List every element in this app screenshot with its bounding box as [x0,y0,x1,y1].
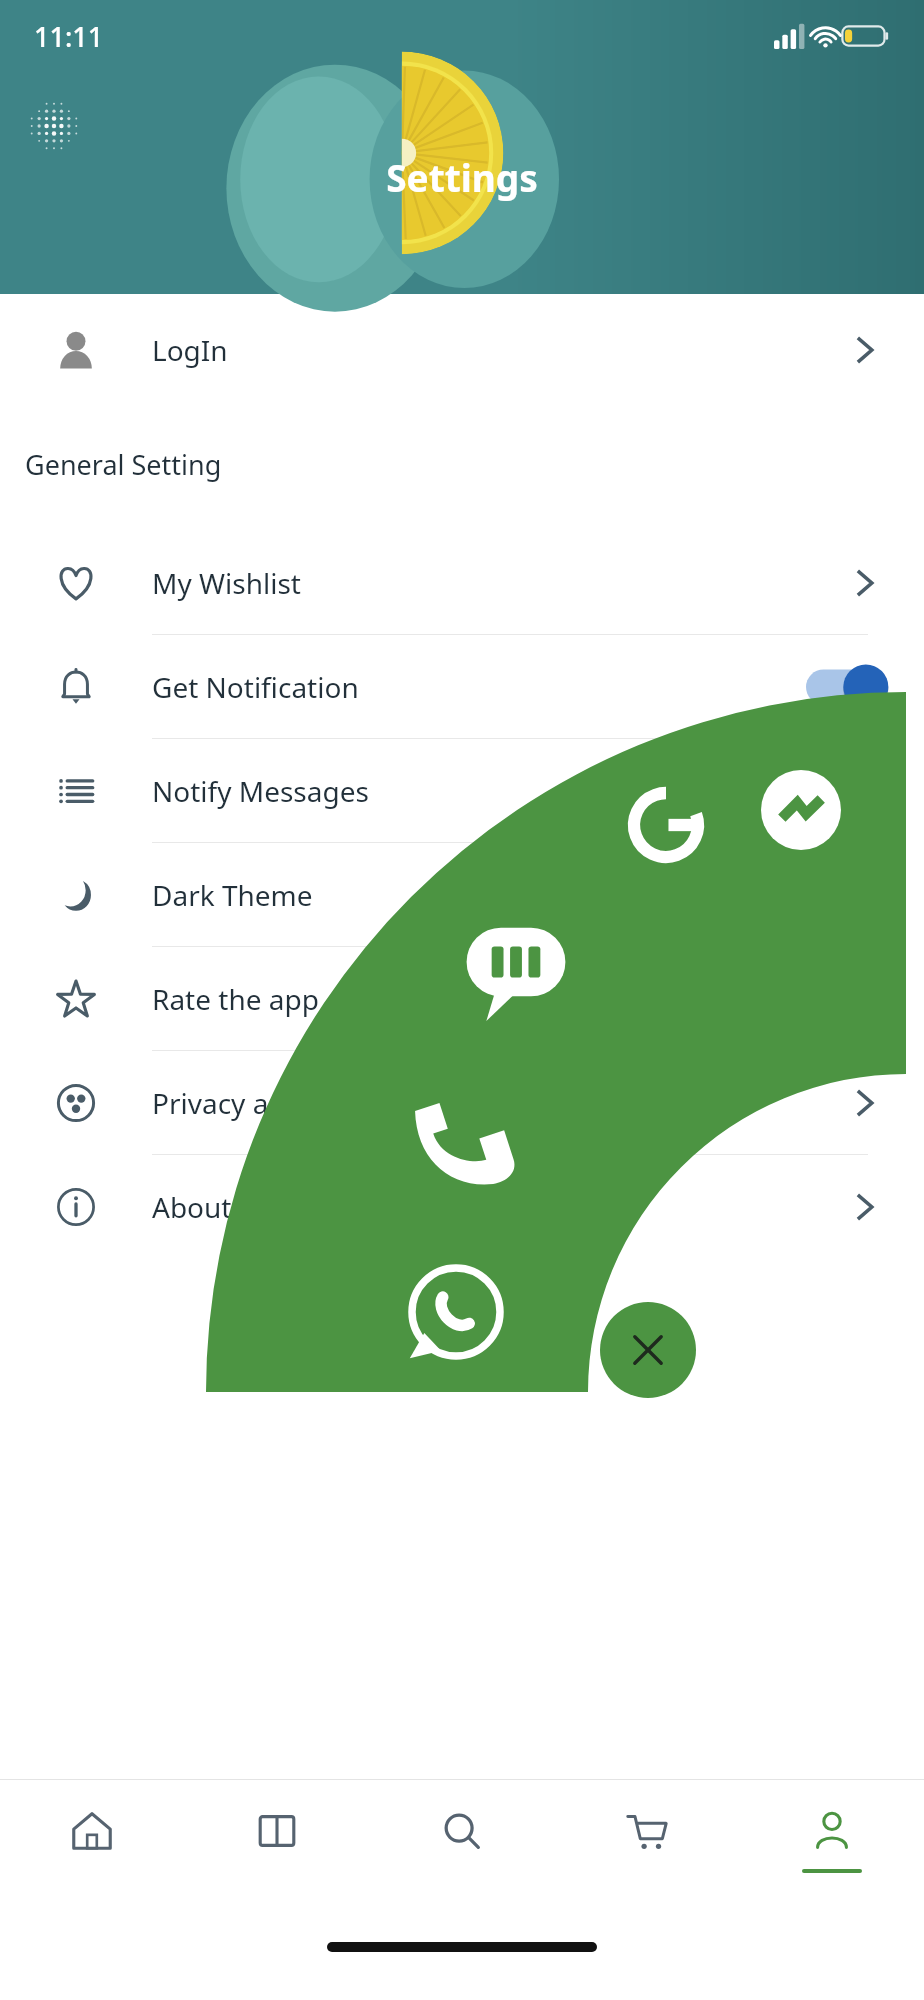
staticText: Settings [386,152,538,202]
staticText: Privacy and Term [152,1084,378,1122]
staticText: 11:11 [34,18,104,55]
button[interactable]: Dark Theme [0,843,924,946]
button[interactable]: Home [0,1780,184,1900]
button[interactable]: Privacy and Term [0,1051,924,1154]
button[interactable]: Profile [739,1780,924,1900]
button[interactable]: Rate the app [0,947,924,1050]
staticText: General Setting [25,446,222,483]
staticText: Rate the app [152,980,319,1018]
button[interactable]: Close share menu [600,1302,696,1398]
staticText: About Us [152,1188,273,1226]
button[interactable]: Catalog [184,1780,369,1900]
button[interactable]: My Wishlist [0,531,924,634]
button[interactable]: Menu [28,100,80,152]
staticText: LogIn [152,331,228,369]
button[interactable]: Notify Messages [0,739,924,842]
staticText: Dark Theme [152,876,313,914]
button[interactable]: Search [369,1780,554,1900]
staticText: Notify Messages [152,772,369,810]
button[interactable]: Get Notification [0,635,924,738]
button[interactable]: LogIn [0,304,924,396]
button[interactable]: About Us [0,1155,924,1258]
staticText: My Wishlist [152,564,301,602]
button[interactable]: Cart [554,1780,739,1900]
staticText: Get Notification [152,668,359,706]
